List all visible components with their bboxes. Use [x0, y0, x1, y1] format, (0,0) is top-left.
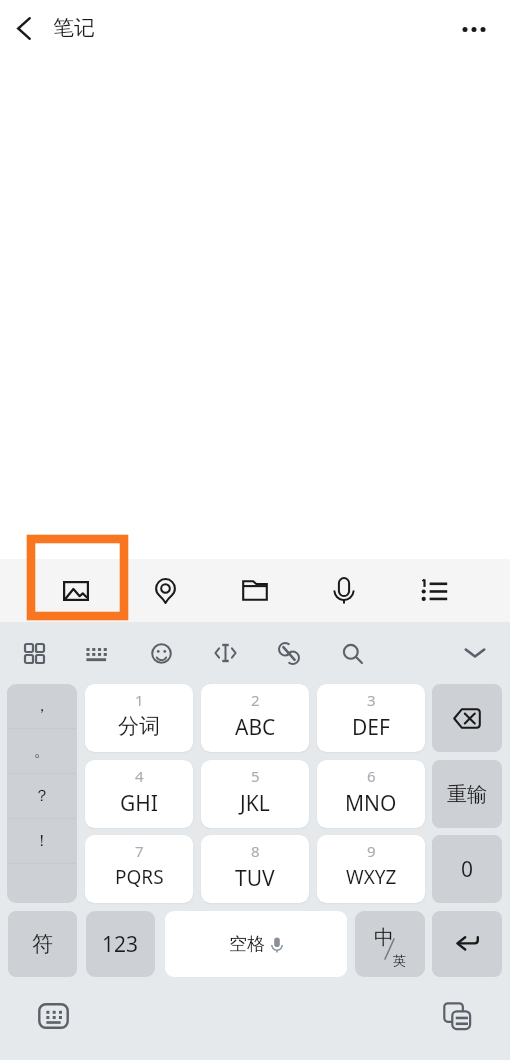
staticText: 5	[251, 766, 260, 786]
button[interactable]: Switch keyboard	[33, 996, 73, 1036]
staticText: 。	[34, 741, 50, 761]
staticText: 3	[367, 690, 376, 710]
button[interactable]: 9	[317, 835, 425, 903]
button[interactable]: 8	[201, 835, 309, 903]
button[interactable]: Clipboard link	[270, 634, 308, 672]
staticText: 符	[32, 931, 53, 957]
button[interactable]: 7	[85, 835, 193, 903]
staticText: 2	[251, 690, 260, 710]
staticText: 123	[102, 930, 139, 959]
button[interactable]: 重输	[432, 760, 502, 828]
button[interactable]: Chinese / English	[355, 911, 425, 977]
button[interactable]: Voice input	[312, 559, 376, 622]
button[interactable]: Layouts	[15, 634, 53, 672]
staticText: 8	[251, 841, 260, 861]
staticText: 英	[393, 952, 406, 968]
button[interactable]: 6	[317, 760, 425, 828]
staticText: 笔记	[53, 15, 95, 41]
staticText: 1	[135, 690, 144, 710]
staticText: 重输	[447, 782, 487, 807]
staticText: 分词	[118, 713, 160, 739]
button[interactable]: Keyboard	[78, 634, 116, 672]
staticText: 4	[135, 766, 144, 786]
button[interactable]: 2	[201, 684, 309, 752]
button[interactable]: ？	[7, 774, 77, 818]
staticText: 6	[367, 766, 376, 786]
button[interactable]: ，	[7, 684, 77, 728]
button[interactable]: Hide keyboard	[456, 634, 494, 672]
staticText: JKL	[240, 789, 270, 818]
staticText: WXYZ	[346, 864, 397, 890]
staticText: ！	[34, 831, 50, 851]
button[interactable]: 0	[432, 835, 502, 903]
button[interactable]: 3	[317, 684, 425, 752]
button[interactable]: 。	[7, 729, 77, 773]
button[interactable]: Enter	[432, 911, 502, 977]
button[interactable]: More options	[450, 4, 498, 52]
button[interactable]: Emoji	[142, 634, 180, 672]
staticText: PQRS	[115, 864, 164, 890]
button[interactable]: 1	[85, 684, 193, 752]
button[interactable]: Cursor	[206, 634, 244, 672]
button[interactable]: 123	[86, 911, 155, 977]
button[interactable]: 空格	[165, 911, 347, 977]
staticText: 0	[461, 855, 474, 884]
button[interactable]: Back	[0, 4, 48, 52]
staticText: 中	[374, 925, 394, 950]
staticText: MNO	[345, 789, 397, 818]
button[interactable]: ！	[7, 819, 77, 863]
button[interactable]: 符	[8, 911, 77, 977]
button[interactable]: 4	[85, 760, 193, 828]
staticText: ABC	[235, 713, 276, 742]
button[interactable]: Delete	[432, 684, 502, 752]
button[interactable]: Insert image	[44, 559, 108, 622]
button[interactable]: Location	[133, 559, 197, 622]
staticText: 7	[135, 841, 144, 861]
button[interactable]: Search	[333, 634, 371, 672]
staticText: ，	[34, 696, 50, 716]
button[interactable]: Folder	[223, 559, 287, 622]
button[interactable]: List	[402, 559, 466, 622]
staticText: 空格	[229, 933, 265, 956]
staticText: DEF	[352, 713, 390, 742]
staticText: TUV	[235, 864, 275, 893]
button[interactable]: Clipboard	[437, 996, 477, 1036]
staticText: GHI	[120, 789, 158, 818]
button[interactable]: 5	[201, 760, 309, 828]
staticText: 9	[367, 841, 376, 861]
staticText: ？	[34, 786, 50, 806]
